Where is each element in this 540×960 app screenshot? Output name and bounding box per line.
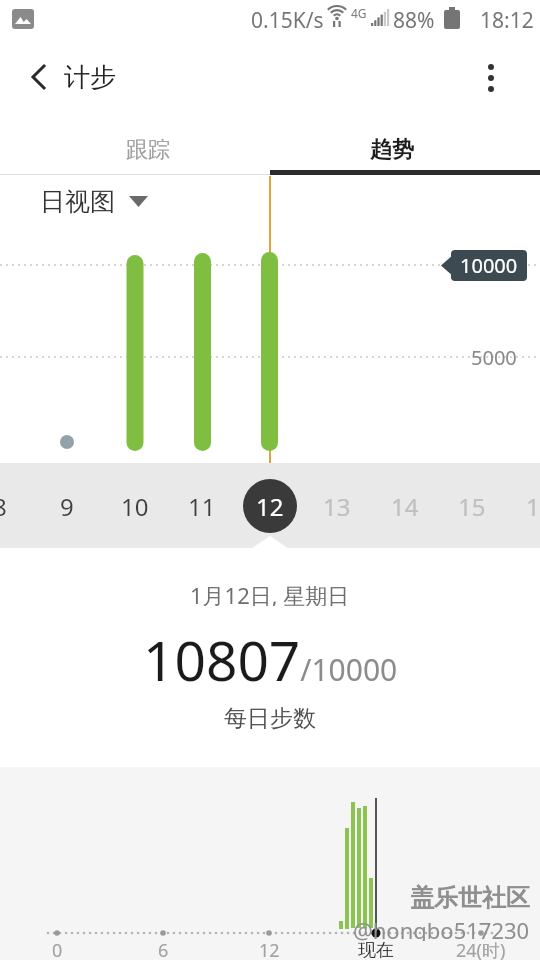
staticText: 18:12 [480,6,534,32]
staticText: 跟踪 [126,136,170,164]
staticText: 趋势 [370,136,414,164]
staticText: 0 [52,938,63,960]
staticText: 24(时) [456,938,506,960]
staticText: 5000 [471,344,517,370]
staticText: 计步 [64,61,116,94]
staticText: 日视图 [40,186,115,216]
staticText: 14 [391,490,419,523]
staticText: 每日步数 [224,704,316,730]
staticText: 1月12日, 星期日 [190,580,350,606]
staticText: 现在 [358,939,394,960]
button[interactable]: 趋势 [257,125,527,174]
staticText: @hongbo517230 [353,915,530,941]
staticText: 12 [259,938,280,960]
staticText: 9 [60,490,74,523]
staticText: 15 [458,490,486,523]
staticText: 10 [121,490,149,523]
button[interactable]: 12 [243,479,297,533]
staticText: 0.15K/s [251,6,324,32]
staticText: 12 [256,490,284,523]
staticText: 10807/10000 [143,622,398,694]
button[interactable] [28,64,48,90]
staticText: 盖乐世社区 [410,883,530,911]
staticText: 16 [526,490,540,523]
staticText: 4G [351,5,367,21]
staticText: 10000 [460,252,518,279]
button[interactable] [482,63,500,93]
staticText: 88% [393,6,435,32]
staticText: 8 [0,490,7,523]
staticText: 11 [188,490,216,523]
staticText: 6 [158,938,169,960]
staticText: 13 [323,490,351,523]
button[interactable]: 跟踪 [13,125,283,174]
button[interactable]: 日视图 [40,186,148,216]
